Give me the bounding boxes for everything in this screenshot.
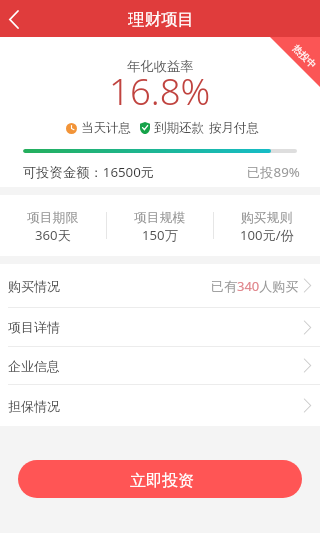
staticText: 热投中 bbox=[290, 42, 319, 71]
button[interactable]: 购买情况 bbox=[0, 264, 320, 307]
staticText: 理财项目 bbox=[128, 9, 194, 30]
staticText: 到期还款 bbox=[154, 120, 204, 136]
button[interactable]: 项目详情 bbox=[0, 308, 320, 346]
staticText: 企业信息 bbox=[8, 358, 60, 374]
button[interactable]: 立即投资 bbox=[18, 460, 302, 498]
button[interactable]: 企业信息 bbox=[0, 347, 320, 384]
staticText: 已有340人购买 bbox=[211, 277, 299, 295]
staticText: 购买规则 bbox=[241, 210, 293, 226]
staticText: 360天 bbox=[35, 226, 71, 244]
button[interactable]: 担保情况 bbox=[0, 385, 320, 426]
staticText: 购买情况 bbox=[8, 278, 60, 294]
staticText: 项目期限 bbox=[27, 210, 79, 226]
staticText: 已投89% bbox=[247, 163, 300, 181]
staticText: 担保情况 bbox=[8, 398, 60, 414]
button[interactable]: Back bbox=[0, 0, 28, 37]
staticText: 150万 bbox=[142, 226, 178, 244]
staticText: 项目详情 bbox=[8, 319, 60, 335]
staticText: 100元/份 bbox=[240, 226, 294, 244]
staticText: 可投资金额：16500元 bbox=[23, 163, 155, 181]
staticText: 项目规模 bbox=[134, 210, 186, 226]
staticText: 立即投资 bbox=[130, 471, 194, 491]
staticText: 当天计息 bbox=[81, 120, 131, 136]
staticText: 年化收益率 bbox=[127, 58, 194, 75]
staticText: 16.8% bbox=[109, 66, 211, 116]
staticText: 按月付息 bbox=[209, 120, 259, 136]
